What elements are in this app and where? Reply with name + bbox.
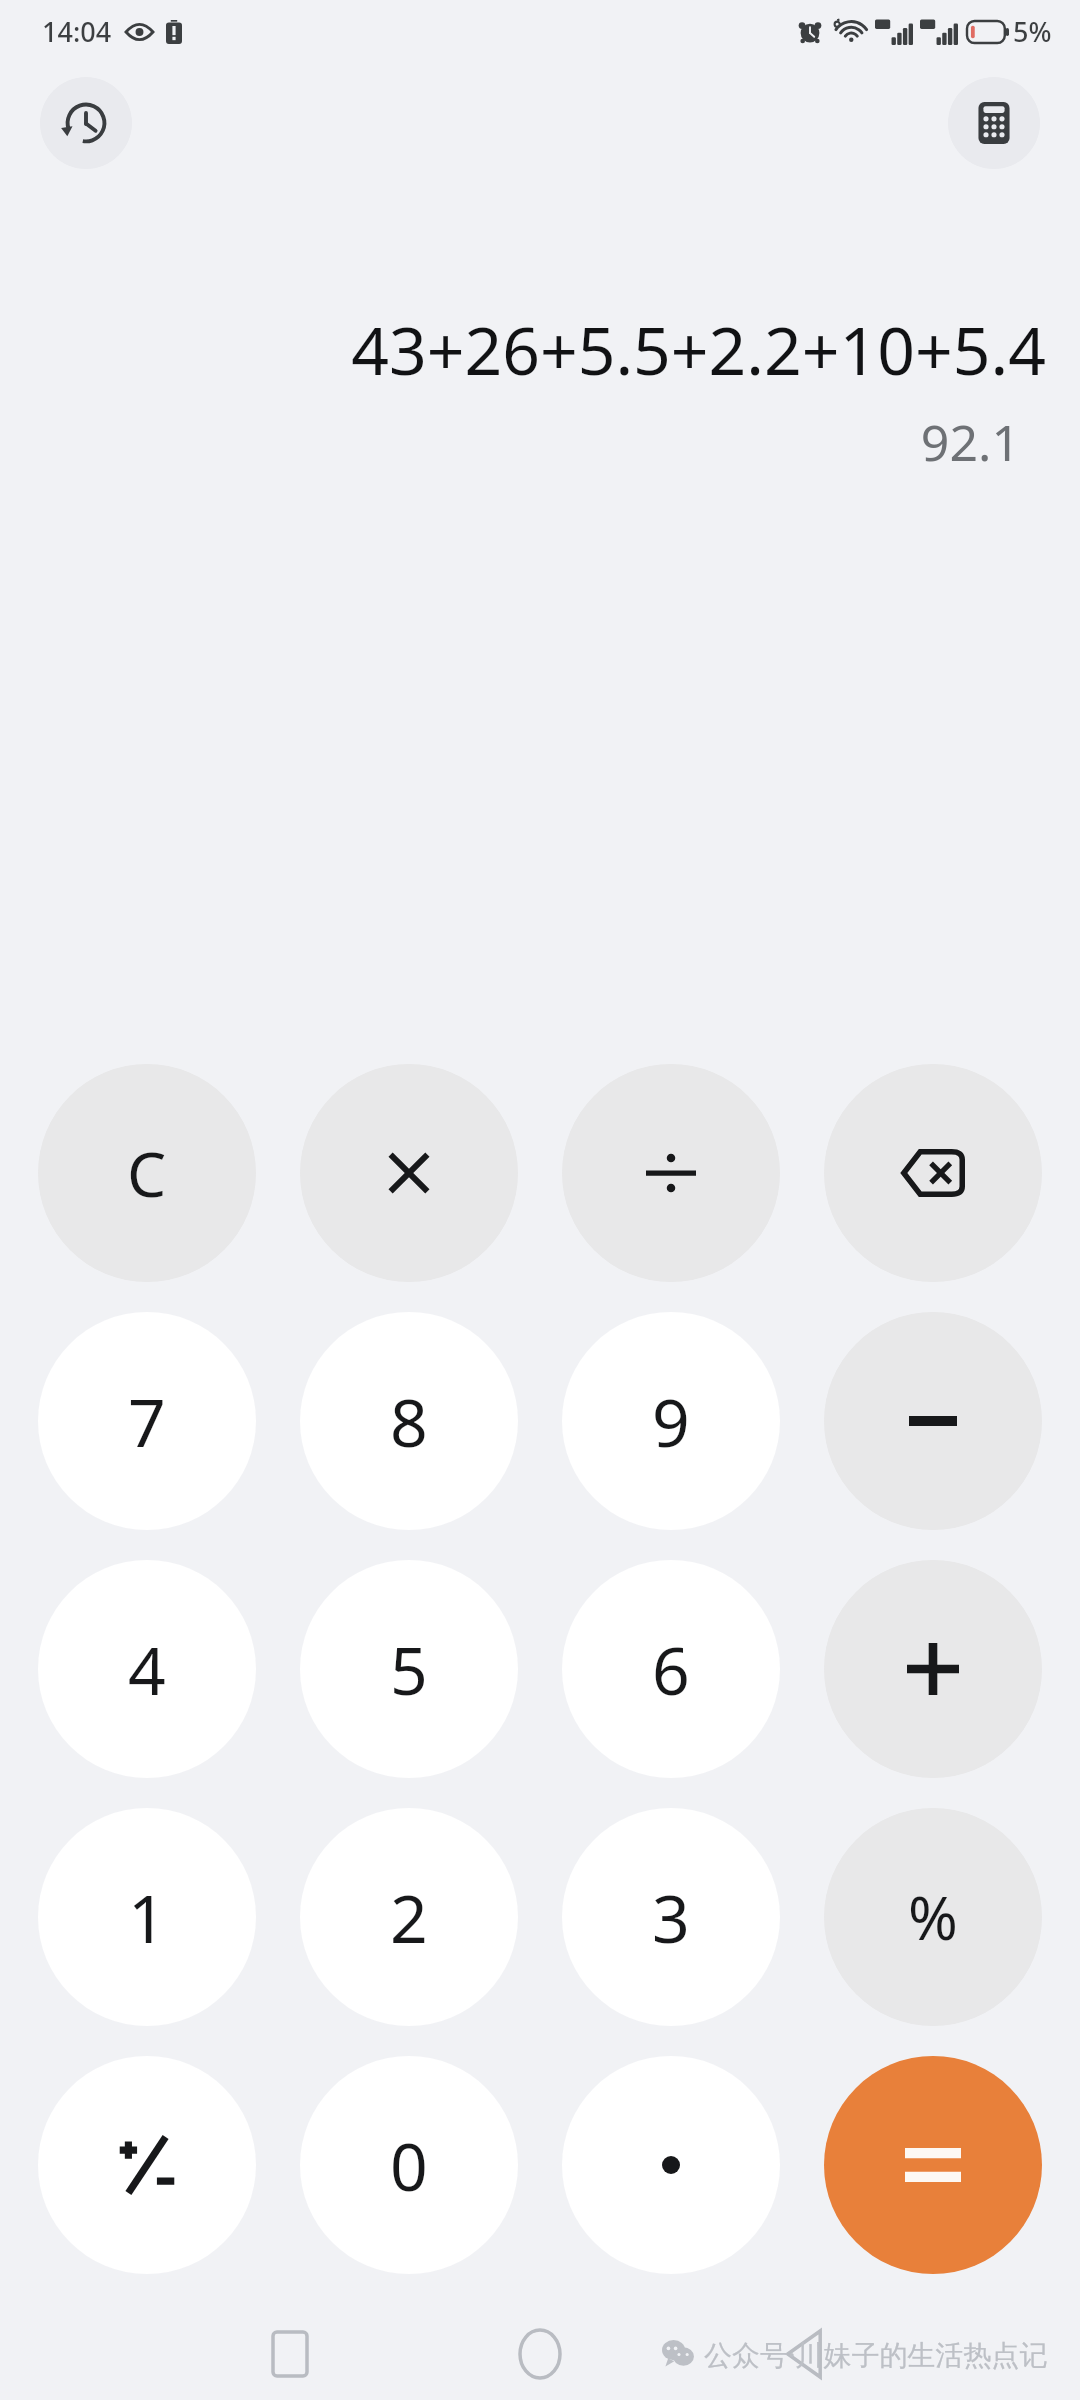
button[interactable]: Decimal point (562, 2056, 780, 2274)
staticText: 3 (652, 1872, 690, 1962)
button[interactable]: Equals (824, 2056, 1042, 2274)
staticText: 公众号·川妹子的生活热点记 (704, 2335, 1048, 2373)
button[interactable]: Back (776, 2326, 832, 2382)
button[interactable]: Multiply (300, 1064, 518, 1282)
staticText: 9 (652, 1376, 690, 1466)
button[interactable]: Calculator mode (948, 77, 1040, 169)
staticText: 5% (1013, 13, 1052, 50)
button[interactable]: 3 (562, 1808, 780, 2026)
staticText: 2 (390, 1872, 428, 1962)
button[interactable]: Plus minus (38, 2056, 256, 2274)
staticText: 8 (390, 1376, 428, 1466)
button[interactable]: Backspace (824, 1064, 1042, 1282)
button[interactable]: Percent (824, 1808, 1042, 2026)
button[interactable]: 8 (300, 1312, 518, 1530)
button[interactable]: History (40, 77, 132, 169)
button[interactable]: 1 (38, 1808, 256, 2026)
staticText: 14:04 (42, 13, 112, 50)
button[interactable]: 0 (300, 2056, 518, 2274)
staticText: 7 (128, 1376, 166, 1466)
button[interactable]: 4 (38, 1560, 256, 1778)
staticText: 6 (652, 1624, 690, 1714)
staticText: C (127, 1131, 167, 1215)
button[interactable]: C (38, 1064, 256, 1282)
staticText: % (908, 1876, 958, 1958)
staticText: 4 (128, 1624, 166, 1714)
button[interactable]: 7 (38, 1312, 256, 1530)
button[interactable]: Minus (824, 1312, 1042, 1530)
button[interactable]: Home (510, 2324, 570, 2384)
staticText: 1 (128, 1872, 166, 1962)
button[interactable]: Plus (824, 1560, 1042, 1778)
button[interactable]: Divide (562, 1064, 780, 1282)
button[interactable]: Recents (262, 2326, 318, 2382)
button[interactable]: 6 (562, 1560, 780, 1778)
staticText: 43+26+5.5+2.2+10+5.4 (34, 304, 1046, 394)
button[interactable]: 9 (562, 1312, 780, 1530)
staticText: 92.1 (34, 408, 1020, 476)
button[interactable]: 5 (300, 1560, 518, 1778)
staticText: 5 (390, 1624, 428, 1714)
button[interactable]: 2 (300, 1808, 518, 2026)
staticText: 0 (390, 2120, 428, 2210)
